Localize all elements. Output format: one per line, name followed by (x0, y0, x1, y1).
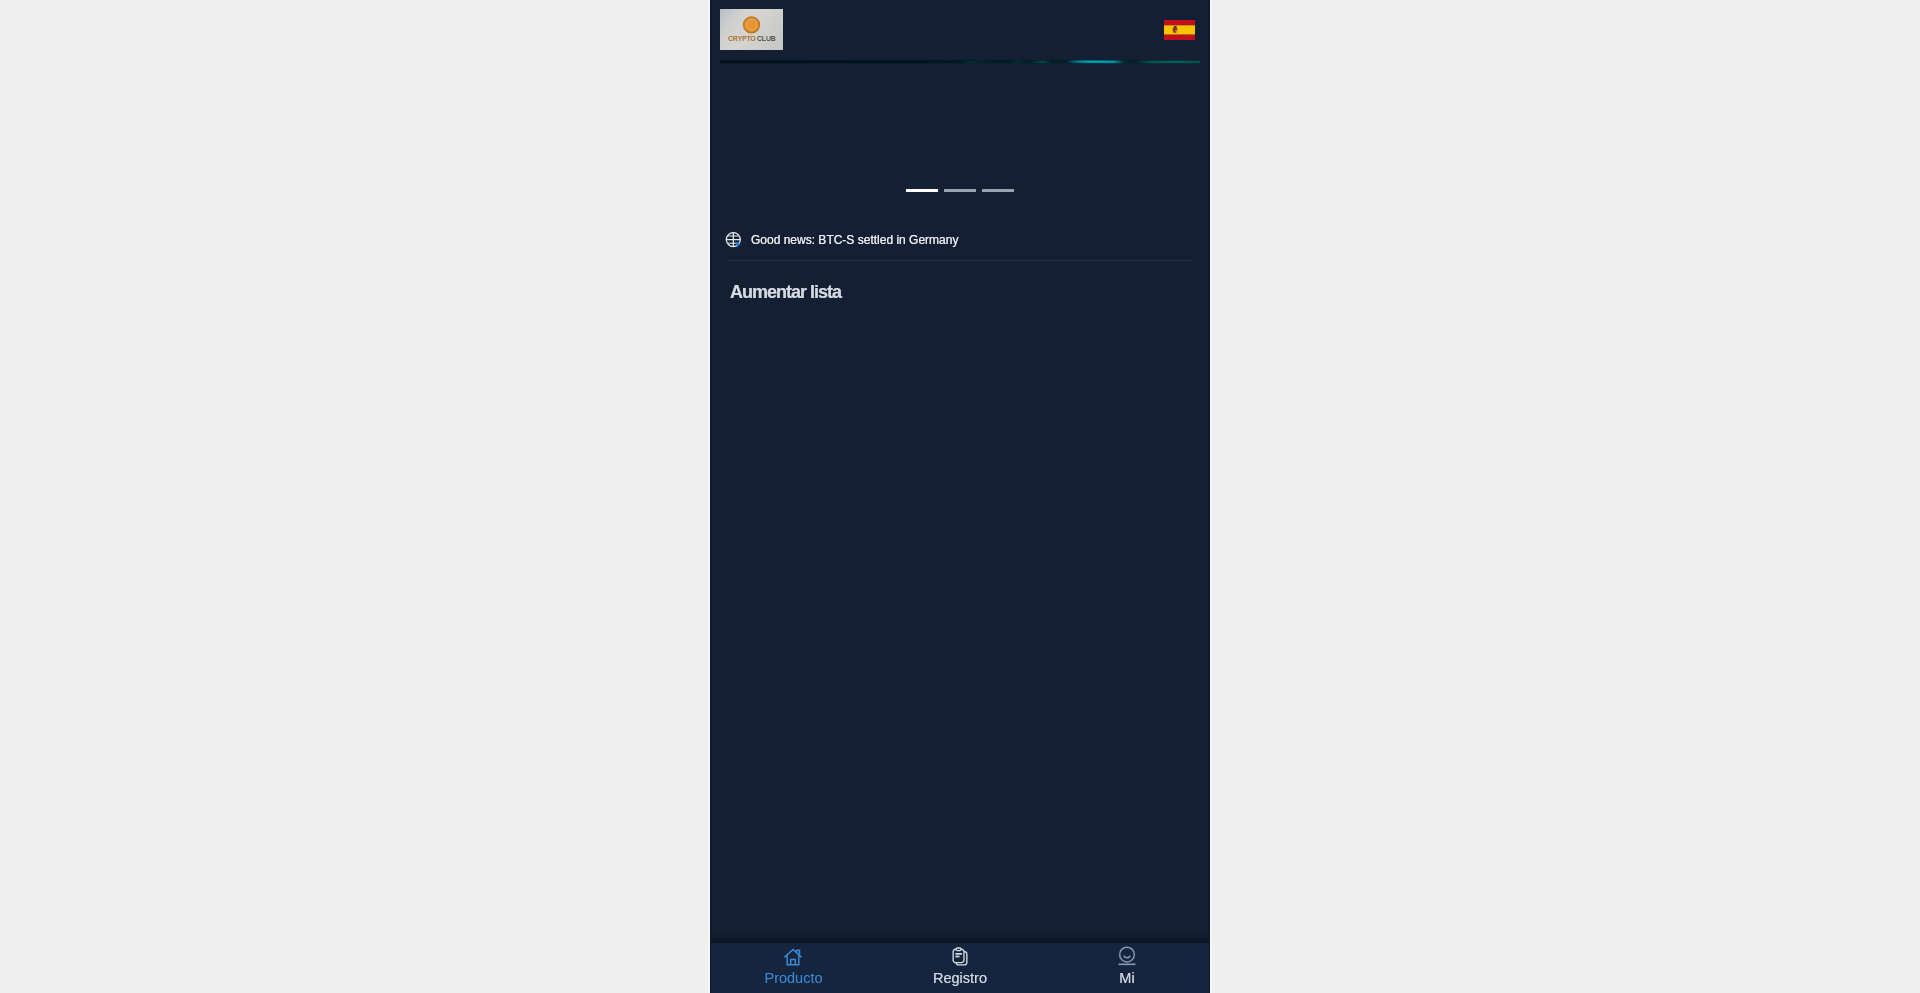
button[interactable]: Registro (876, 943, 1043, 993)
staticText: Registro (933, 970, 987, 986)
staticText: Aumentar lista (730, 282, 842, 302)
staticText: CLUB (757, 35, 776, 43)
button[interactable]: Producto (710, 943, 876, 993)
button[interactable]: Banner page 1 (906, 186, 938, 195)
button[interactable]: Banner page 2 (944, 186, 976, 195)
button[interactable]: Language: Spanish (1164, 20, 1195, 40)
staticText: Producto (764, 970, 823, 986)
staticText: Mi (1119, 970, 1135, 986)
staticText: CRYPTO (728, 35, 756, 43)
button[interactable]: Mi (1043, 943, 1210, 993)
button[interactable]: Crypto Club logo (720, 9, 783, 50)
button[interactable]: Banner page 3 (982, 186, 1014, 195)
staticText: Good news: BTC-S settled in Germany (751, 233, 959, 246)
button[interactable]: Good news: BTC-S settled in Germany (710, 223, 1210, 256)
